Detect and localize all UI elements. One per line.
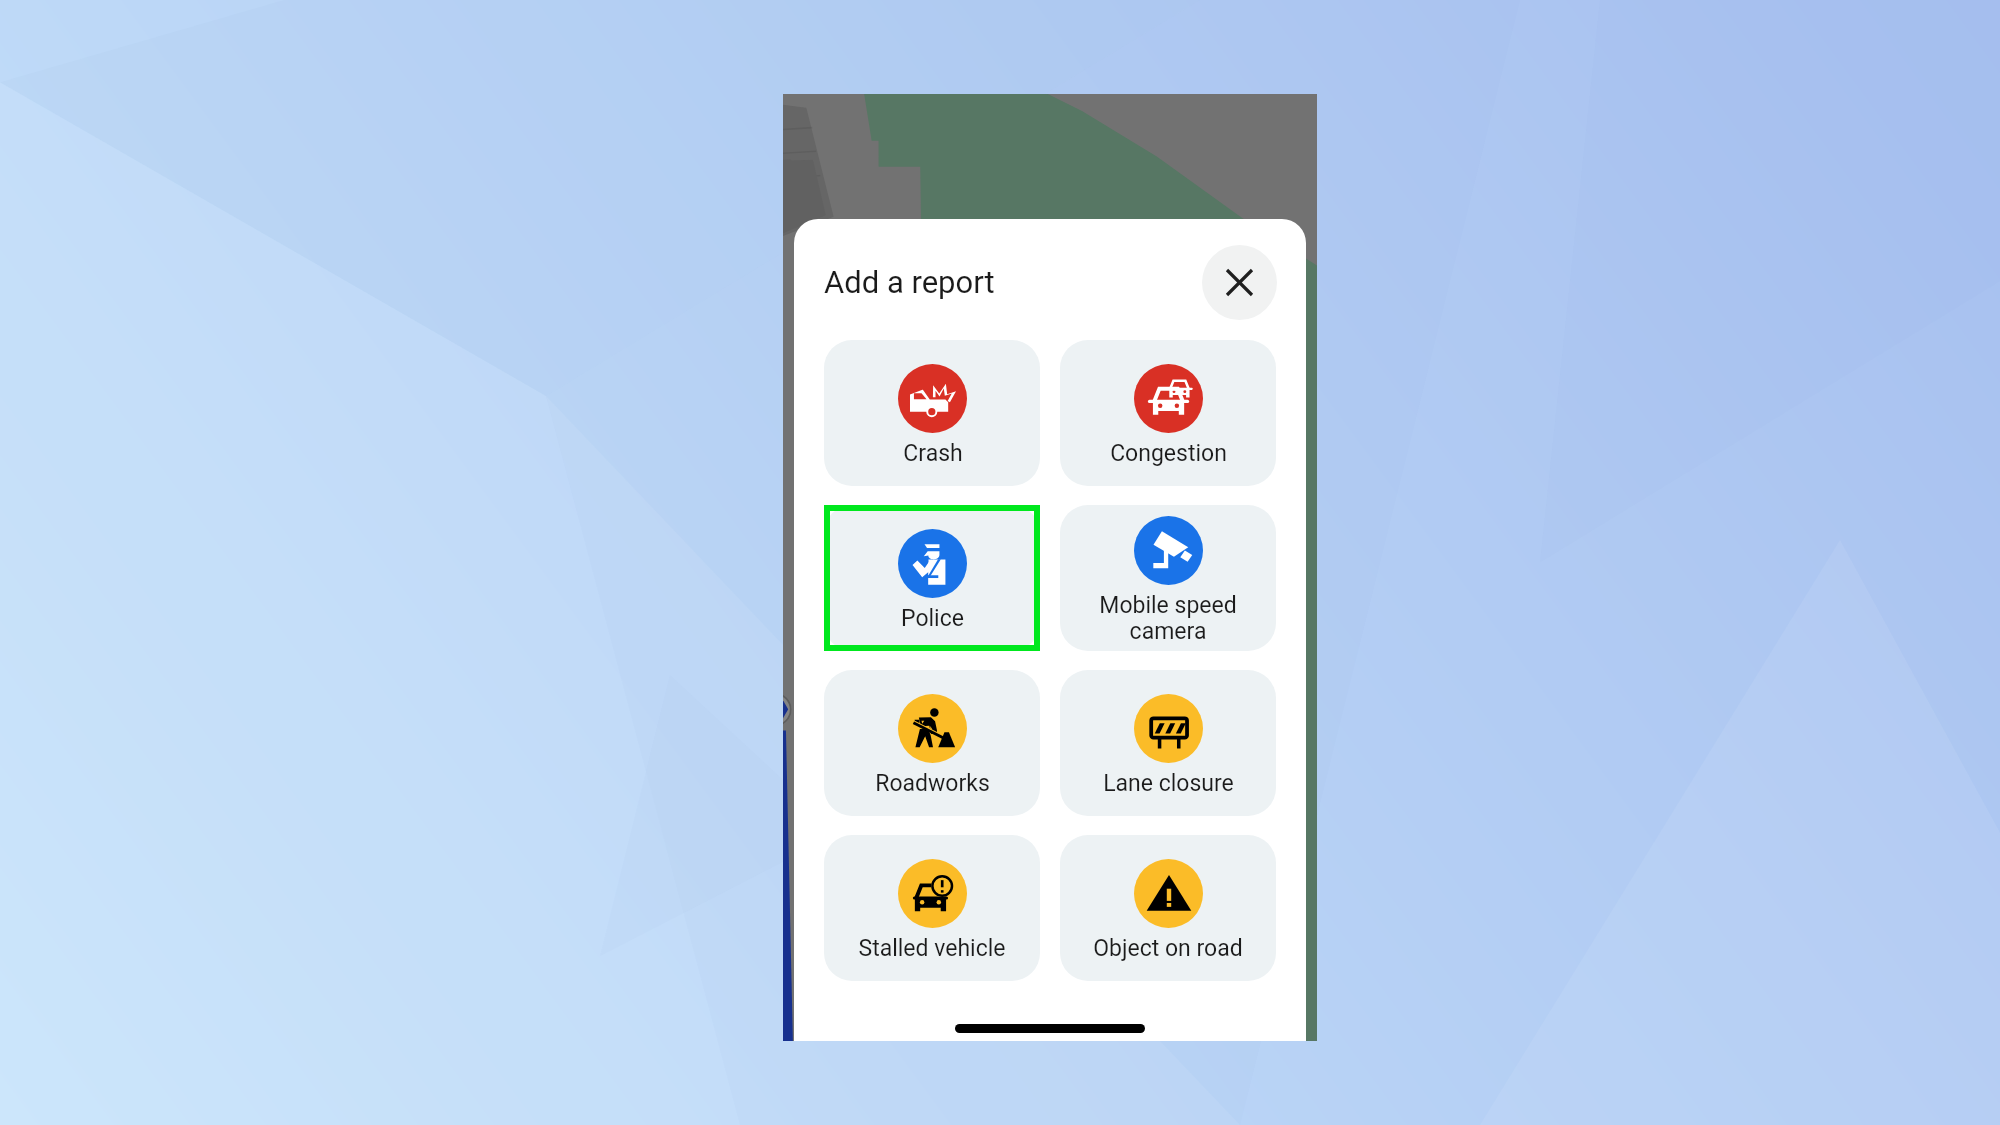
staticText: Crash [903, 440, 963, 467]
staticText: Roadworks [875, 770, 990, 797]
staticText: Police [901, 605, 964, 632]
staticText: Mobile speed camera [1099, 592, 1237, 644]
button[interactable]: Congestion [1060, 340, 1276, 486]
button[interactable]: Police [824, 505, 1040, 651]
staticText: Lane closure [1103, 770, 1234, 797]
staticText: Add a report [824, 264, 995, 300]
button[interactable]: Lane closure [1060, 670, 1276, 816]
button[interactable]: Roadworks [824, 670, 1040, 816]
button[interactable]: Mobile speed camera [1060, 505, 1276, 651]
staticText: Stalled vehicle [858, 935, 1006, 962]
staticText: Object on road [1093, 935, 1243, 962]
button[interactable]: Object on road [1060, 835, 1276, 981]
staticText: Congestion [1110, 440, 1227, 467]
button[interactable]: Close [1202, 245, 1277, 320]
button[interactable]: Stalled vehicle [824, 835, 1040, 981]
button[interactable]: Crash [824, 340, 1040, 486]
